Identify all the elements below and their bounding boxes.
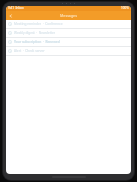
staticText: Weekly digest · Newsletter	[14, 31, 56, 35]
staticText: Alert · Check server	[14, 49, 45, 53]
button[interactable]: Back	[7, 12, 15, 20]
button[interactable]: Alert · Check server	[6, 47, 131, 55]
staticText: Messages	[60, 13, 77, 18]
button[interactable]: Weekly digest · Newsletter	[6, 29, 131, 37]
button[interactable]: Your subscription · Renewed	[6, 38, 131, 46]
staticText: 9:41 Inbox	[8, 6, 24, 10]
button[interactable]: Meeting reminder · Conference	[6, 20, 131, 28]
staticText: Your subscription · Renewed	[14, 40, 60, 44]
staticText: Meeting reminder · Conference	[14, 22, 63, 26]
staticText: 100%	[121, 6, 129, 10]
